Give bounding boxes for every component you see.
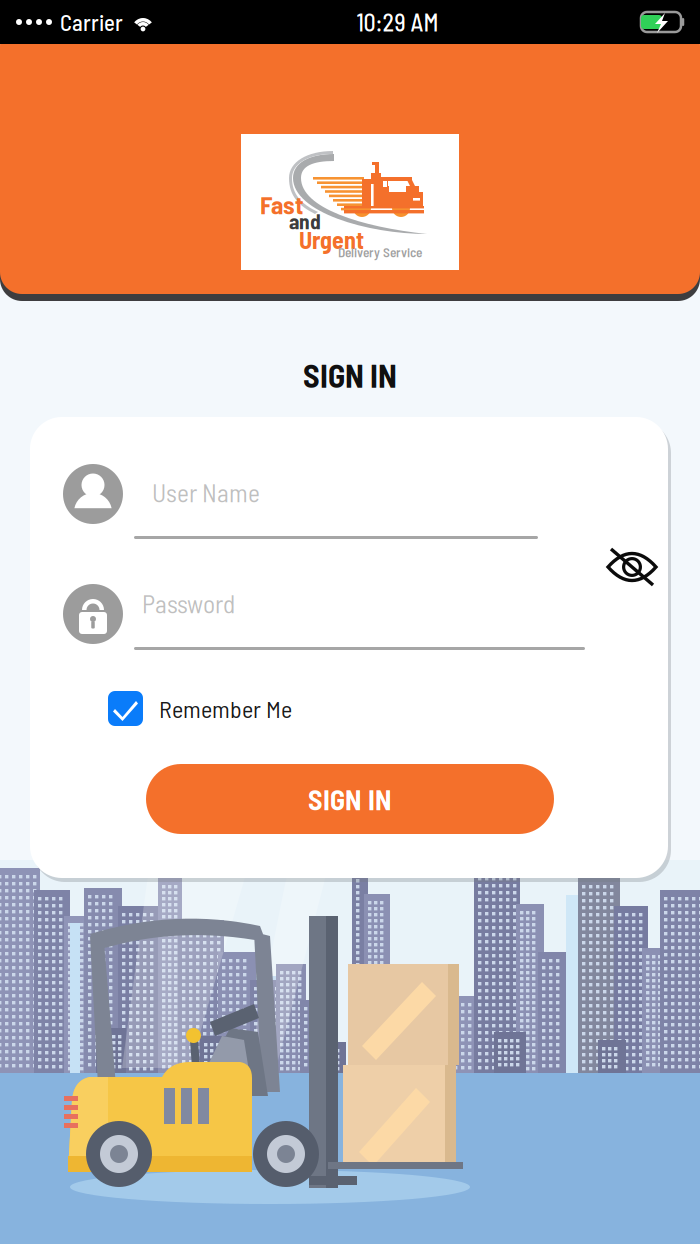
- staticText: Fast: [260, 189, 303, 219]
- staticText: SIGN IN: [308, 782, 392, 816]
- staticText: 10:29 AM: [356, 8, 438, 36]
- staticText: Remember Me: [159, 694, 292, 723]
- staticText: Password: [142, 588, 235, 618]
- staticText: Carrier: [60, 8, 123, 36]
- staticText: SIGN IN: [303, 356, 397, 394]
- staticText: and: [289, 208, 321, 234]
- staticText: User Name: [152, 477, 260, 507]
- button[interactable]: Show password: [596, 538, 668, 596]
- button[interactable]: Remember Me: [108, 691, 292, 726]
- button[interactable]: SIGN IN: [146, 764, 554, 834]
- staticText: Delivery Service: [338, 244, 422, 260]
- staticText: Urgent: [299, 225, 364, 254]
